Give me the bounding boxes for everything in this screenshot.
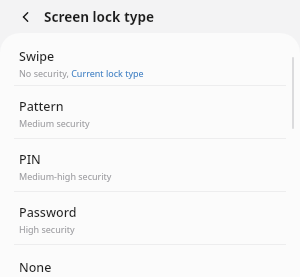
button[interactable]: Pattern xyxy=(0,86,300,138)
staticText: None xyxy=(19,259,52,276)
staticText: Medium security xyxy=(19,117,90,129)
staticText: Screen lock type xyxy=(44,8,155,26)
staticText: Pattern xyxy=(19,98,64,115)
button[interactable]: Password xyxy=(0,192,300,244)
staticText: PIN xyxy=(19,151,41,168)
staticText: Swipe xyxy=(19,48,55,65)
button[interactable]: None xyxy=(0,245,300,277)
staticText: Password xyxy=(19,204,77,221)
staticText: Medium-high security xyxy=(19,170,112,182)
button[interactable]: Navigate up xyxy=(14,5,38,29)
button[interactable]: PIN xyxy=(0,139,300,191)
button[interactable]: Swipe xyxy=(0,33,300,85)
staticText: No security, Current lock type xyxy=(19,67,144,79)
staticText: High security xyxy=(19,223,75,235)
